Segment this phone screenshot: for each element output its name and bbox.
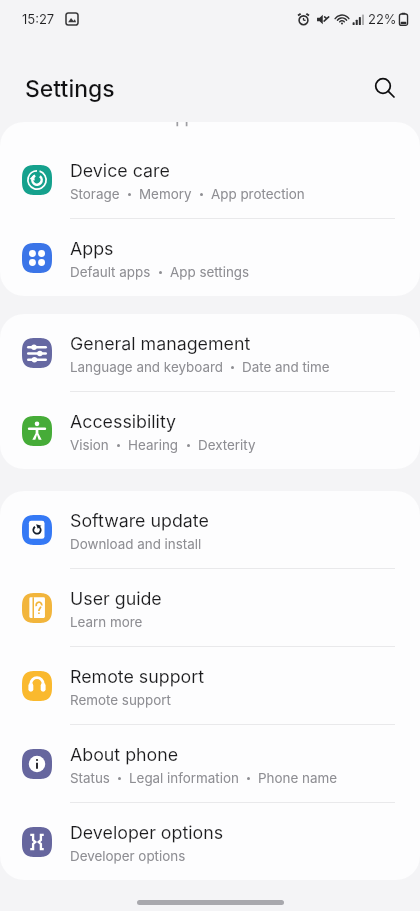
- staticText: Apps: [70, 238, 114, 260]
- staticText: Dexterity: [198, 437, 256, 453]
- button[interactable]: Accessibility: [0, 392, 420, 469]
- staticText: User guide: [70, 588, 162, 610]
- staticText: Settings: [25, 75, 115, 103]
- staticText: Storage: [70, 186, 120, 202]
- staticText: App protection: [211, 186, 305, 202]
- button[interactable]: Developer options: [0, 803, 420, 880]
- staticText: Default apps: [70, 264, 151, 280]
- staticText: Developer options: [70, 822, 224, 844]
- staticText: Hearing: [128, 437, 179, 453]
- staticText: Status: [70, 770, 110, 786]
- staticText: About phone: [70, 744, 179, 766]
- staticText: Remote support: [70, 666, 205, 688]
- staticText: Date and time: [242, 359, 330, 375]
- staticText: Language and keyboard: [70, 359, 223, 375]
- button[interactable]: Remote support: [0, 647, 420, 724]
- staticText: Software update: [70, 510, 209, 532]
- staticText: Legal information: [129, 770, 239, 786]
- staticText: Learn more: [70, 614, 143, 630]
- button[interactable]: Device care: [0, 141, 420, 218]
- staticText: Vision: [70, 437, 109, 453]
- staticText: App settings: [170, 264, 250, 280]
- button[interactable]: Apps: [0, 219, 420, 296]
- staticText: 15:27: [22, 11, 55, 27]
- staticText: Phone name: [258, 770, 337, 786]
- staticText: Device care: [70, 160, 170, 182]
- staticText: General management: [70, 333, 251, 355]
- staticText: 22%: [368, 11, 397, 27]
- staticText: Accessibility: [70, 411, 177, 433]
- button[interactable]: Software update: [0, 491, 420, 568]
- staticText: Developer options: [70, 848, 186, 864]
- staticText: Memory: [139, 186, 192, 202]
- staticText: Remote support: [70, 692, 171, 708]
- button[interactable]: User guide: [0, 569, 420, 646]
- button[interactable]: About phone: [0, 725, 420, 802]
- button[interactable]: General management: [0, 314, 420, 391]
- button[interactable]: Search: [365, 68, 401, 104]
- staticText: Download and install: [70, 536, 202, 552]
